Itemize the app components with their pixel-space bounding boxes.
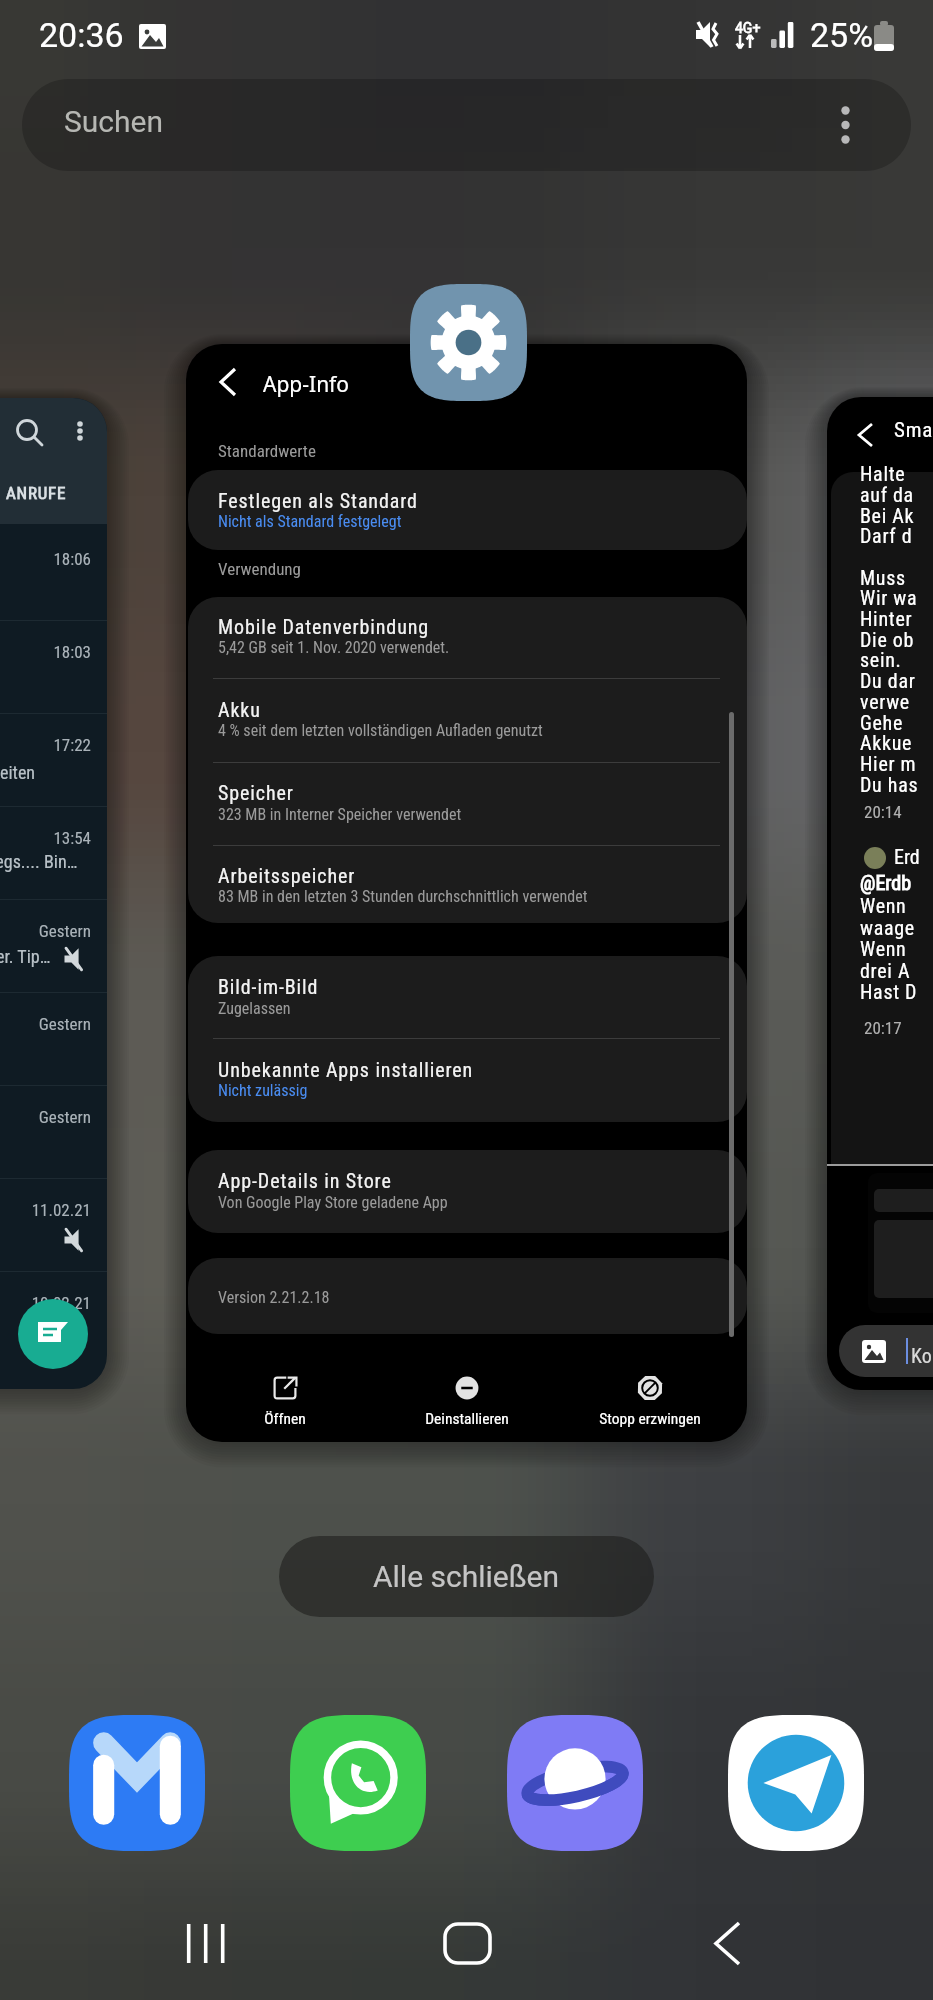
staticText: Hinter [860, 607, 913, 630]
button[interactable]: Home [417, 1903, 517, 1983]
button[interactable]: New chat [18, 1299, 88, 1369]
staticText: 13:54 [0, 828, 91, 848]
staticText: Unbekannte Apps installieren [218, 1058, 474, 1081]
button[interactable]: More options [823, 103, 867, 147]
staticText: 25% [810, 15, 874, 55]
staticText: 10.02.21 [0, 1293, 91, 1313]
staticText: Wir wa [860, 586, 918, 609]
staticText: verwe [860, 690, 910, 713]
button[interactable] [188, 1150, 747, 1233]
staticText: Gestern [0, 1107, 91, 1127]
button[interactable]: Back [827, 397, 933, 1390]
staticText: Hier m [860, 752, 917, 775]
button[interactable]: Suchen [22, 79, 911, 171]
button[interactable]: Mail app [69, 1715, 205, 1851]
staticText: Smartphone [894, 418, 933, 443]
staticText: Stopp erzwingen [560, 1410, 740, 1428]
staticText: Öffnen [195, 1410, 375, 1428]
staticText: Akkue [860, 731, 913, 754]
staticText: Halte [860, 462, 911, 485]
staticText: waage [860, 916, 915, 939]
button[interactable]: Settings app icon [410, 284, 527, 401]
staticText: Arbeitsspeicher [218, 864, 356, 887]
staticText: 18:03 [0, 642, 91, 662]
staticText: Nicht als Standard festgelegt [218, 512, 402, 531]
staticText: Akku [218, 698, 261, 721]
staticText: 4G+ [735, 20, 761, 36]
staticText: 11.02.21 [0, 1200, 91, 1220]
staticText: Nicht zulässig [218, 1081, 308, 1100]
button[interactable]: Back [186, 344, 747, 1442]
button[interactable]: Back [201, 354, 257, 410]
button[interactable]: Kommentar [839, 1325, 933, 1377]
staticText: 4 % seit dem letzten vollständigen Aufla… [218, 721, 543, 740]
staticText: Muss [860, 566, 912, 589]
button[interactable] [188, 597, 747, 923]
staticText: Standardwerte [218, 441, 316, 461]
staticText: Bild-im-Bild [218, 975, 319, 998]
staticText: Gestern [0, 1014, 91, 1034]
staticText: 20:17 [864, 1018, 902, 1038]
staticText: Von Google Play Store geladene App [218, 1193, 448, 1212]
button[interactable]: Alle schließen [279, 1536, 654, 1617]
staticText: Bei Ak [860, 504, 915, 527]
staticText: Gestern [0, 921, 91, 941]
staticText: Suchen [64, 104, 164, 139]
staticText: regs.... Bin… [0, 851, 78, 872]
button[interactable] [188, 956, 747, 1122]
button[interactable]: Internet browser [507, 1715, 643, 1851]
staticText: 18:06 [0, 549, 91, 569]
button[interactable]: Search calls [7, 410, 53, 456]
staticText: Darf d [860, 524, 913, 547]
button[interactable] [188, 1258, 747, 1334]
staticText: Zugelassen [218, 999, 291, 1018]
staticText: drei A [860, 959, 911, 982]
staticText: Deinstallieren [377, 1410, 557, 1428]
staticText: Hast D [860, 980, 918, 1003]
button[interactable] [560, 1370, 740, 1440]
staticText: 83 MB in den letzten 3 Stunden durchschn… [218, 887, 588, 906]
staticText: App-Info [263, 370, 350, 399]
staticText: eiten [0, 762, 36, 783]
staticText: App-Details in Store [218, 1169, 392, 1192]
staticText: 20:14 [864, 802, 902, 822]
staticText: 17:22 [0, 735, 91, 755]
button[interactable]: More options [59, 410, 101, 452]
button[interactable]: Recents [156, 1903, 256, 1983]
button[interactable]: Telegram [728, 1715, 864, 1851]
button[interactable] [195, 1370, 375, 1440]
staticText: 5,42 GB seit 1. Nov. 2020 verwendet. [218, 638, 450, 657]
staticText: Wenn [860, 937, 912, 960]
staticText: auf da [860, 483, 914, 506]
button[interactable]: Back [839, 411, 893, 459]
button[interactable]: Search calls [0, 398, 107, 1389]
staticText: ANRUFE [6, 483, 67, 503]
button[interactable] [377, 1370, 557, 1440]
staticText: Wenn [860, 894, 912, 917]
button[interactable] [188, 470, 747, 550]
staticText: er. Tip… [0, 946, 51, 967]
staticText: sein. [860, 648, 902, 671]
staticText: 323 MB in Interner Speicher verwendet [218, 805, 462, 824]
staticText: Verwendung [218, 559, 301, 579]
staticText: 20:36 [39, 15, 124, 55]
staticText: Festlegen als Standard [218, 489, 418, 512]
staticText: Erd [894, 845, 920, 868]
staticText: Gehe [860, 711, 909, 734]
staticText: Du dar [860, 669, 916, 692]
button[interactable]: WhatsApp [290, 1715, 426, 1851]
staticText: Mobile Datenverbindung [218, 615, 430, 638]
staticText: Speicher [218, 781, 294, 804]
staticText: Du has [860, 773, 919, 796]
button[interactable]: Back [677, 1903, 777, 1983]
staticText: @Erdb [860, 871, 912, 894]
staticText: Kommentar [911, 1344, 933, 1367]
staticText: Alle schließen [373, 1559, 560, 1594]
staticText: Version 2.21.2.18 [218, 1288, 330, 1307]
staticText: Die ob [860, 628, 915, 651]
